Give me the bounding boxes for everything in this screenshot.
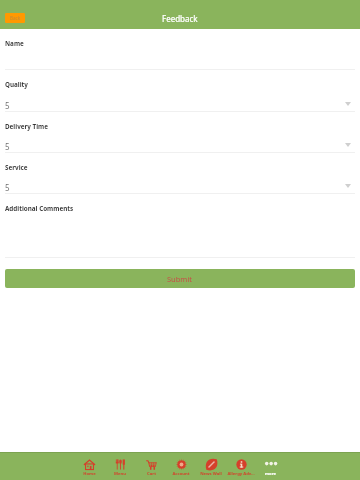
other: Allergy Advice — [236, 459, 247, 470]
staticText: Allergy Adv... — [227, 471, 255, 477]
staticText: News Wall — [200, 471, 222, 477]
button[interactable]: News Wall — [190, 459, 232, 480]
button[interactable]: Home — [68, 459, 110, 480]
button[interactable]: Menu — [99, 459, 141, 480]
button[interactable]: Allergy Advice — [220, 459, 262, 480]
other: Home — [84, 459, 95, 470]
button[interactable]: Service dropdown — [5, 154, 355, 193]
button[interactable]: Back — [5, 13, 25, 23]
other: News Wall — [206, 459, 217, 470]
other: Account — [176, 459, 187, 470]
staticText: Cart — [147, 471, 156, 477]
button[interactable]: Cart — [130, 459, 172, 480]
button[interactable]: More — [249, 459, 291, 480]
button[interactable]: Delivery Time dropdown — [5, 113, 355, 152]
staticText: Home — [83, 471, 96, 477]
staticText: Name — [5, 39, 24, 48]
button[interactable]: Quality dropdown — [5, 72, 355, 111]
staticText: Menu — [114, 471, 126, 477]
staticText: Additional Comments — [5, 204, 74, 213]
other: Cart — [146, 459, 157, 470]
staticText: Delivery Time — [5, 122, 48, 131]
other: Menu — [115, 459, 126, 470]
button[interactable]: Account — [160, 459, 202, 480]
staticText: more — [265, 471, 276, 477]
button[interactable]: Additional Comments input — [5, 195, 355, 258]
staticText: Quality — [5, 80, 28, 89]
staticText: Submit — [167, 274, 193, 284]
staticText: Back — [10, 15, 21, 21]
staticText: 5 — [5, 182, 10, 193]
button[interactable]: Submit — [5, 269, 355, 288]
staticText: Feedback — [162, 13, 198, 24]
button[interactable]: Name input — [5, 31, 355, 70]
staticText: Service — [5, 163, 28, 172]
staticText: 5 — [5, 100, 10, 111]
other: More — [265, 459, 276, 470]
staticText: 5 — [5, 141, 10, 152]
staticText: Account — [172, 471, 190, 477]
